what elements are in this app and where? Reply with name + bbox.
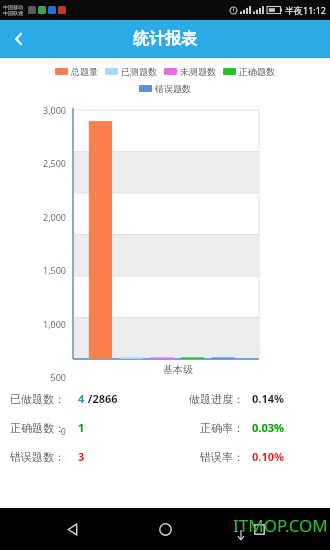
staticText: 3,000 [0,104,66,116]
staticText: 1 [78,420,85,435]
staticText: 总题量 [71,66,98,77]
staticText: 未测题数 [180,66,216,77]
button[interactable]: 已测题数 [105,66,157,77]
staticText: 3 [78,449,85,464]
staticText: 错误题数 [155,83,191,94]
staticText: 做题进度： [162,392,244,406]
button[interactable]: 已做题数： [10,391,320,406]
button[interactable]: 错误题数 [139,83,191,94]
staticText: 0 [0,425,66,437]
staticText: 正确题数： [10,421,78,435]
staticText: 正确率： [162,421,244,435]
staticText: ITMOP.COM [233,514,328,537]
staticText: 500 [0,371,66,383]
staticText: 0.03% [252,420,284,435]
staticText: 4 [78,391,85,406]
staticText: 已测题数 [121,66,157,77]
staticText: 半夜11:12 [285,4,327,16]
staticText: 已做题数： [10,392,78,406]
staticText: 正确题数 [239,66,275,77]
staticText: 基本级 [163,363,193,376]
staticText: 2,000 [0,211,66,223]
staticText: 统计报表 [133,29,197,49]
staticText: 2,500 [0,157,66,169]
staticText: /2866 [85,391,118,406]
button[interactable]: Back [50,508,94,550]
staticText: 1,000 [0,318,66,330]
button[interactable]: 正确题数： [10,420,320,435]
button[interactable]: 正确题数 [223,66,275,77]
button[interactable]: 错误题数： [10,449,320,464]
button[interactable]: 未测题数 [164,66,216,77]
staticText: 错误率： [162,450,244,464]
staticText: 错误题数： [10,450,78,464]
button[interactable]: Home [143,508,187,550]
button[interactable]: 总题量 [55,66,98,77]
button[interactable]: Back [0,20,38,58]
staticText: 中国移动 [3,4,23,10]
staticText: 1,500 [0,264,66,276]
staticText: 0.10% [252,449,284,464]
staticText: 中国联通 [3,10,23,16]
staticText: 0.14% [252,391,284,406]
button[interactable]: Recent apps [237,508,281,550]
